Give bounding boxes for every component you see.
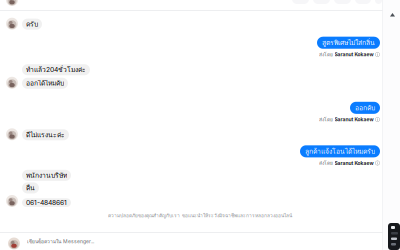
button[interactable]: พนักงานบริษัท <box>0 170 400 181</box>
staticText: สูตรพิเศษไม่ใส่กลิ่น <box>322 38 375 48</box>
staticText: ⓘ <box>375 51 380 57</box>
button[interactable]: ลูกค้าแจ้งโอนได้ไหมครับ <box>0 145 400 167</box>
staticText: ทำแล้ว204ชั่วโมงค่ะ <box>26 65 86 75</box>
staticText: คืน <box>26 183 35 193</box>
button[interactable]: ทำแล้ว204ชั่วโมงค่ะ <box>0 64 400 75</box>
staticText: ออกได้ไหมคับ <box>26 78 64 88</box>
staticText: ⓘ <box>375 160 380 166</box>
staticText: Saranut Kokaew <box>334 52 373 57</box>
staticText: ส่งโดย <box>319 159 333 167</box>
staticText: ดีไม่แรงนะค่ะ <box>26 130 65 140</box>
button[interactable]: ออกได้ไหมคับ <box>0 77 400 89</box>
button[interactable]: สูตรพิเศษไม่ใส่กลิ่น <box>0 37 400 58</box>
staticText: ส่งโดย <box>319 51 333 58</box>
button[interactable]: ดีไม่แรงนะค่ะ <box>0 128 400 140</box>
button[interactable]: ออกคับ <box>0 102 400 123</box>
button[interactable]: คืน <box>0 182 400 193</box>
button[interactable]: ครับ <box>0 18 400 30</box>
staticText: เขียนข้อความใน Messenger... <box>27 238 94 245</box>
staticText: Saranut Kokaew <box>334 117 373 122</box>
staticText: ครับ <box>26 19 38 29</box>
button[interactable]: 061-4848661 <box>0 195 400 207</box>
staticText: ส่งโดย <box>319 116 333 123</box>
staticText: ออกคับ <box>355 103 375 113</box>
button[interactable]: เขียนข้อความใน Messenger... <box>0 233 400 250</box>
staticText: 061-4848661 <box>26 199 67 206</box>
staticText: Saranut Kokaew <box>334 160 373 166</box>
staticText: ⓘ <box>375 117 380 122</box>
staticText: ความปลอดภัยของคุณสำคัญกับเรา ขอแนะนำให้ร… <box>108 212 292 219</box>
staticText: พนักงานบริษัท <box>26 170 67 180</box>
staticText: ลูกค้าแจ้งโอนได้ไหมครับ <box>305 146 375 156</box>
